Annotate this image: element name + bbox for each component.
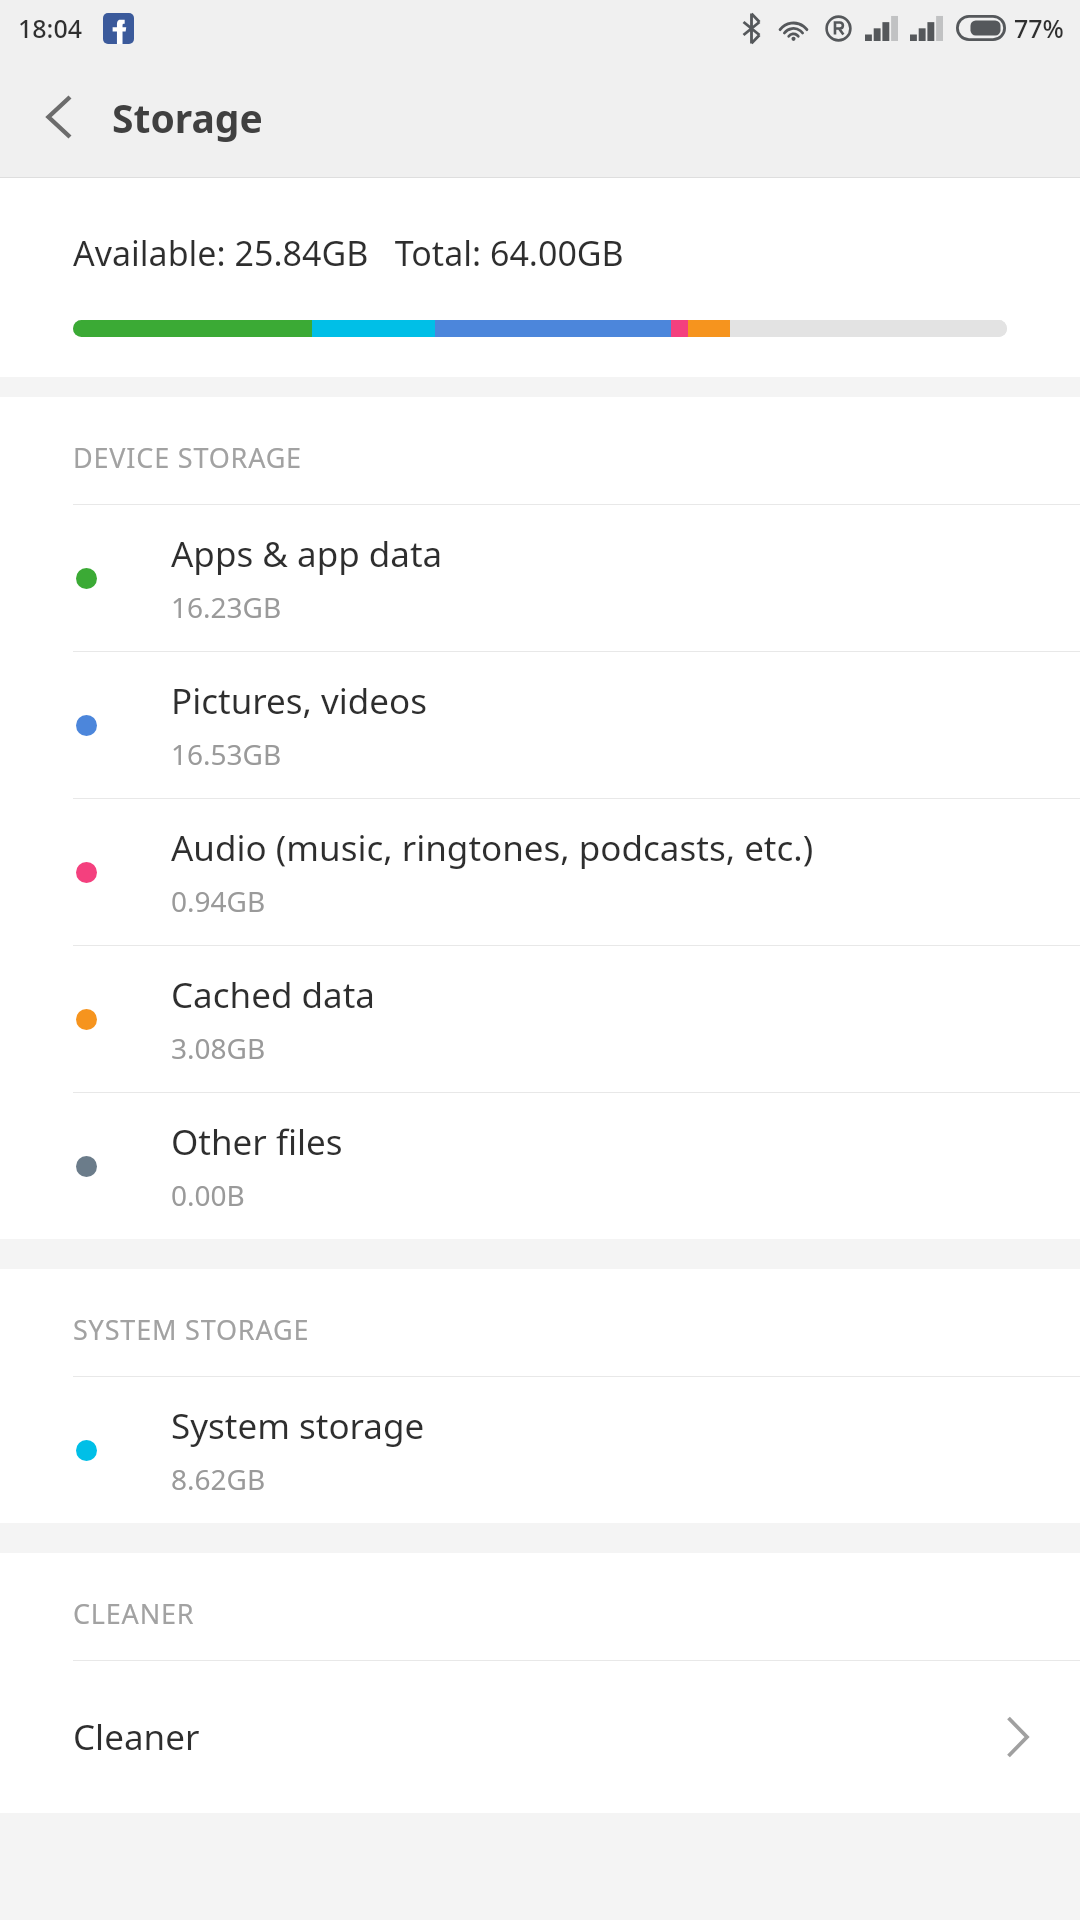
staticText: CLEANER: [73, 1595, 195, 1632]
staticText: System storage: [171, 1402, 425, 1450]
staticText: 3.08GB: [171, 1029, 266, 1067]
button[interactable]: Other files: [0, 1093, 1080, 1239]
staticText: 0.94GB: [171, 882, 266, 920]
button[interactable]: Cleaner: [0, 1661, 1080, 1813]
button[interactable]: Back: [20, 79, 96, 155]
staticText: SYSTEM STORAGE: [73, 1311, 310, 1348]
button[interactable]: System storage: [0, 1377, 1080, 1523]
staticText: 77%: [1014, 11, 1064, 45]
staticText: Storage: [112, 91, 263, 144]
staticText: 18:04: [18, 11, 83, 45]
staticText: Apps & app data: [171, 530, 443, 578]
staticText: 8.62GB: [171, 1460, 266, 1498]
staticText: 0.00B: [171, 1176, 245, 1214]
button[interactable]: Cached data: [0, 946, 1080, 1093]
staticText: Cleaner: [73, 1713, 1007, 1761]
staticText: Available: 25.84GB Total: 64.00GB: [73, 230, 624, 276]
staticText: 16.23GB: [171, 588, 282, 626]
staticText: DEVICE STORAGE: [73, 439, 302, 476]
staticText: Other files: [171, 1118, 343, 1166]
staticText: Cached data: [171, 971, 375, 1019]
button[interactable]: Pictures, videos: [0, 652, 1080, 799]
button[interactable]: Apps & app data: [0, 505, 1080, 652]
button[interactable]: Audio (music, ringtones, podcasts, etc.): [0, 799, 1080, 946]
staticText: 16.53GB: [171, 735, 282, 773]
staticText: Pictures, videos: [171, 677, 428, 725]
staticText: Audio (music, ringtones, podcasts, etc.): [171, 824, 814, 872]
